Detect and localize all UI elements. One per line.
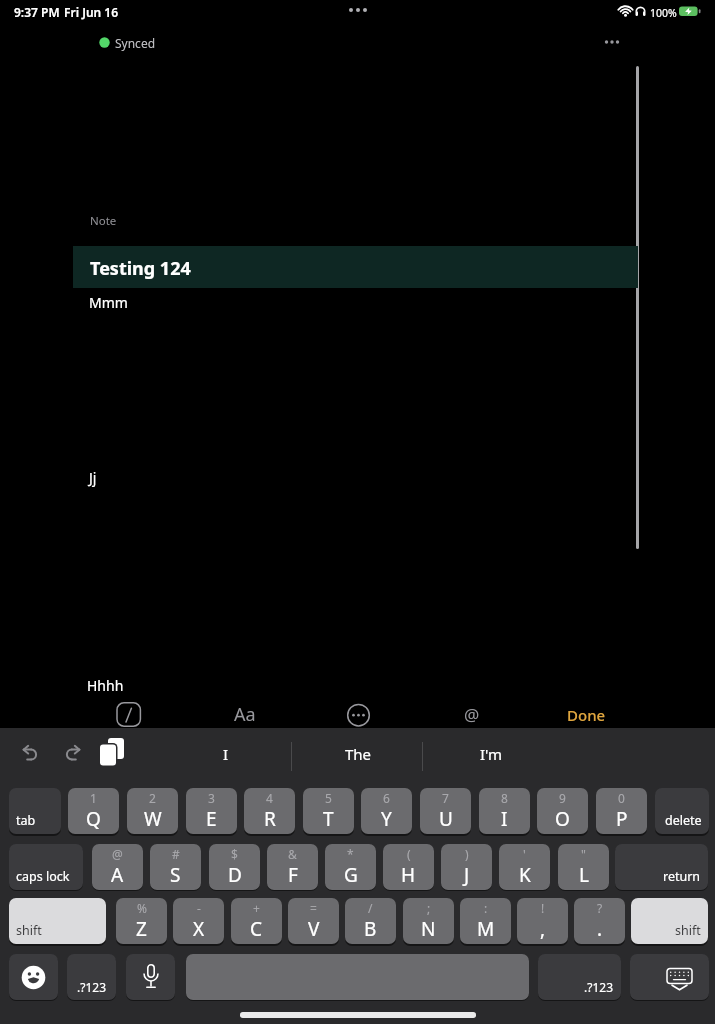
button[interactable]: ( <box>383 844 434 890</box>
staticText: @ <box>112 846 123 862</box>
staticText: , <box>540 916 546 942</box>
button[interactable]: shift <box>631 898 708 944</box>
button[interactable] <box>92 30 162 54</box>
staticText: V <box>308 916 320 942</box>
button[interactable]: 1 <box>68 788 119 834</box>
button[interactable]: ) <box>441 844 492 890</box>
button[interactable]: 0 <box>596 788 647 834</box>
button[interactable] <box>96 737 128 771</box>
button[interactable]: ' <box>499 844 550 890</box>
button[interactable] <box>56 740 86 770</box>
staticText: tab <box>16 812 36 829</box>
staticText: E <box>206 806 217 832</box>
button[interactable] <box>112 698 145 731</box>
staticText: P <box>616 806 628 832</box>
button[interactable] <box>630 954 709 1000</box>
button[interactable]: & <box>267 844 318 890</box>
button[interactable]: Done <box>557 698 615 731</box>
staticText: * <box>347 846 354 862</box>
button[interactable]: # <box>150 844 201 890</box>
button[interactable]: ; <box>403 898 454 944</box>
staticText: Y <box>381 806 392 832</box>
staticText: - <box>197 900 201 916</box>
staticText: @ <box>464 703 480 726</box>
button[interactable]: $ <box>209 844 260 890</box>
staticText: ( <box>407 846 411 862</box>
staticText: ? <box>597 900 603 916</box>
button[interactable]: + <box>231 898 282 944</box>
staticText: Z <box>136 916 147 942</box>
button[interactable]: - <box>173 898 224 944</box>
button[interactable]: 4 <box>244 788 295 834</box>
staticText: X <box>193 916 205 942</box>
button[interactable]: 3 <box>186 788 237 834</box>
staticText: N <box>421 916 436 942</box>
staticText: O <box>555 806 570 832</box>
button[interactable]: return <box>615 844 708 890</box>
button[interactable]: 5 <box>303 788 354 834</box>
button[interactable]: .?123 <box>67 954 116 1000</box>
button[interactable]: Aa <box>228 698 261 731</box>
staticText: / <box>368 900 373 916</box>
button[interactable]: caps lock <box>9 844 83 890</box>
staticText: K <box>519 862 531 888</box>
button[interactable] <box>160 736 290 778</box>
staticText: .?123 <box>77 979 107 995</box>
staticText: shift <box>16 922 42 939</box>
button[interactable] <box>598 30 626 54</box>
staticText: R <box>264 806 276 832</box>
button[interactable]: tab <box>9 788 61 834</box>
staticText: Mmm <box>89 293 128 312</box>
button[interactable] <box>186 954 529 1000</box>
staticText: % <box>137 900 147 916</box>
staticText: T <box>323 806 334 832</box>
button[interactable]: / <box>345 898 396 944</box>
button[interactable]: : <box>460 898 511 944</box>
staticText: Hhhh <box>87 676 124 695</box>
staticText: caps lock <box>16 868 70 885</box>
button[interactable]: 9 <box>537 788 588 834</box>
button[interactable]: @ <box>455 698 488 731</box>
staticText: = <box>310 900 317 916</box>
button[interactable]: " <box>558 844 609 890</box>
button[interactable]: 2 <box>127 788 178 834</box>
staticText: # <box>172 846 180 862</box>
button[interactable]: ! <box>517 898 568 944</box>
staticText: U <box>439 806 453 832</box>
button[interactable] <box>292 736 422 778</box>
staticText: H <box>401 862 416 888</box>
staticText: C <box>250 916 263 942</box>
button[interactable]: * <box>325 844 376 890</box>
button[interactable]: ? <box>574 898 625 944</box>
staticText: I <box>501 806 508 832</box>
staticText: 8 <box>501 790 508 806</box>
button[interactable] <box>9 954 58 1000</box>
staticText: I'm <box>480 744 503 764</box>
staticText: D <box>228 862 242 888</box>
staticText: 0 <box>618 790 625 806</box>
button[interactable]: .?123 <box>538 954 621 1000</box>
button[interactable] <box>126 954 175 1000</box>
staticText: return <box>663 868 701 885</box>
button[interactable]: % <box>116 898 167 944</box>
button[interactable]: = <box>288 898 339 944</box>
staticText: ! <box>541 900 545 916</box>
staticText: . <box>597 916 603 942</box>
staticText: 1 <box>90 790 97 806</box>
button[interactable]: delete <box>655 788 709 834</box>
staticText: : <box>484 900 488 916</box>
staticText: Aa <box>234 702 256 727</box>
button[interactable]: @ <box>92 844 143 890</box>
button[interactable]: 7 <box>420 788 471 834</box>
button[interactable] <box>342 698 375 731</box>
staticText: W <box>144 806 162 832</box>
button[interactable] <box>17 740 47 770</box>
button[interactable]: 6 <box>361 788 412 834</box>
staticText: 9:37 PM <box>14 4 60 20</box>
button[interactable]: 8 <box>479 788 530 834</box>
button[interactable] <box>423 736 558 778</box>
staticText: delete <box>665 812 702 829</box>
button[interactable]: shift <box>9 898 106 944</box>
staticText: Q <box>86 806 101 832</box>
staticText: .?123 <box>584 979 614 995</box>
